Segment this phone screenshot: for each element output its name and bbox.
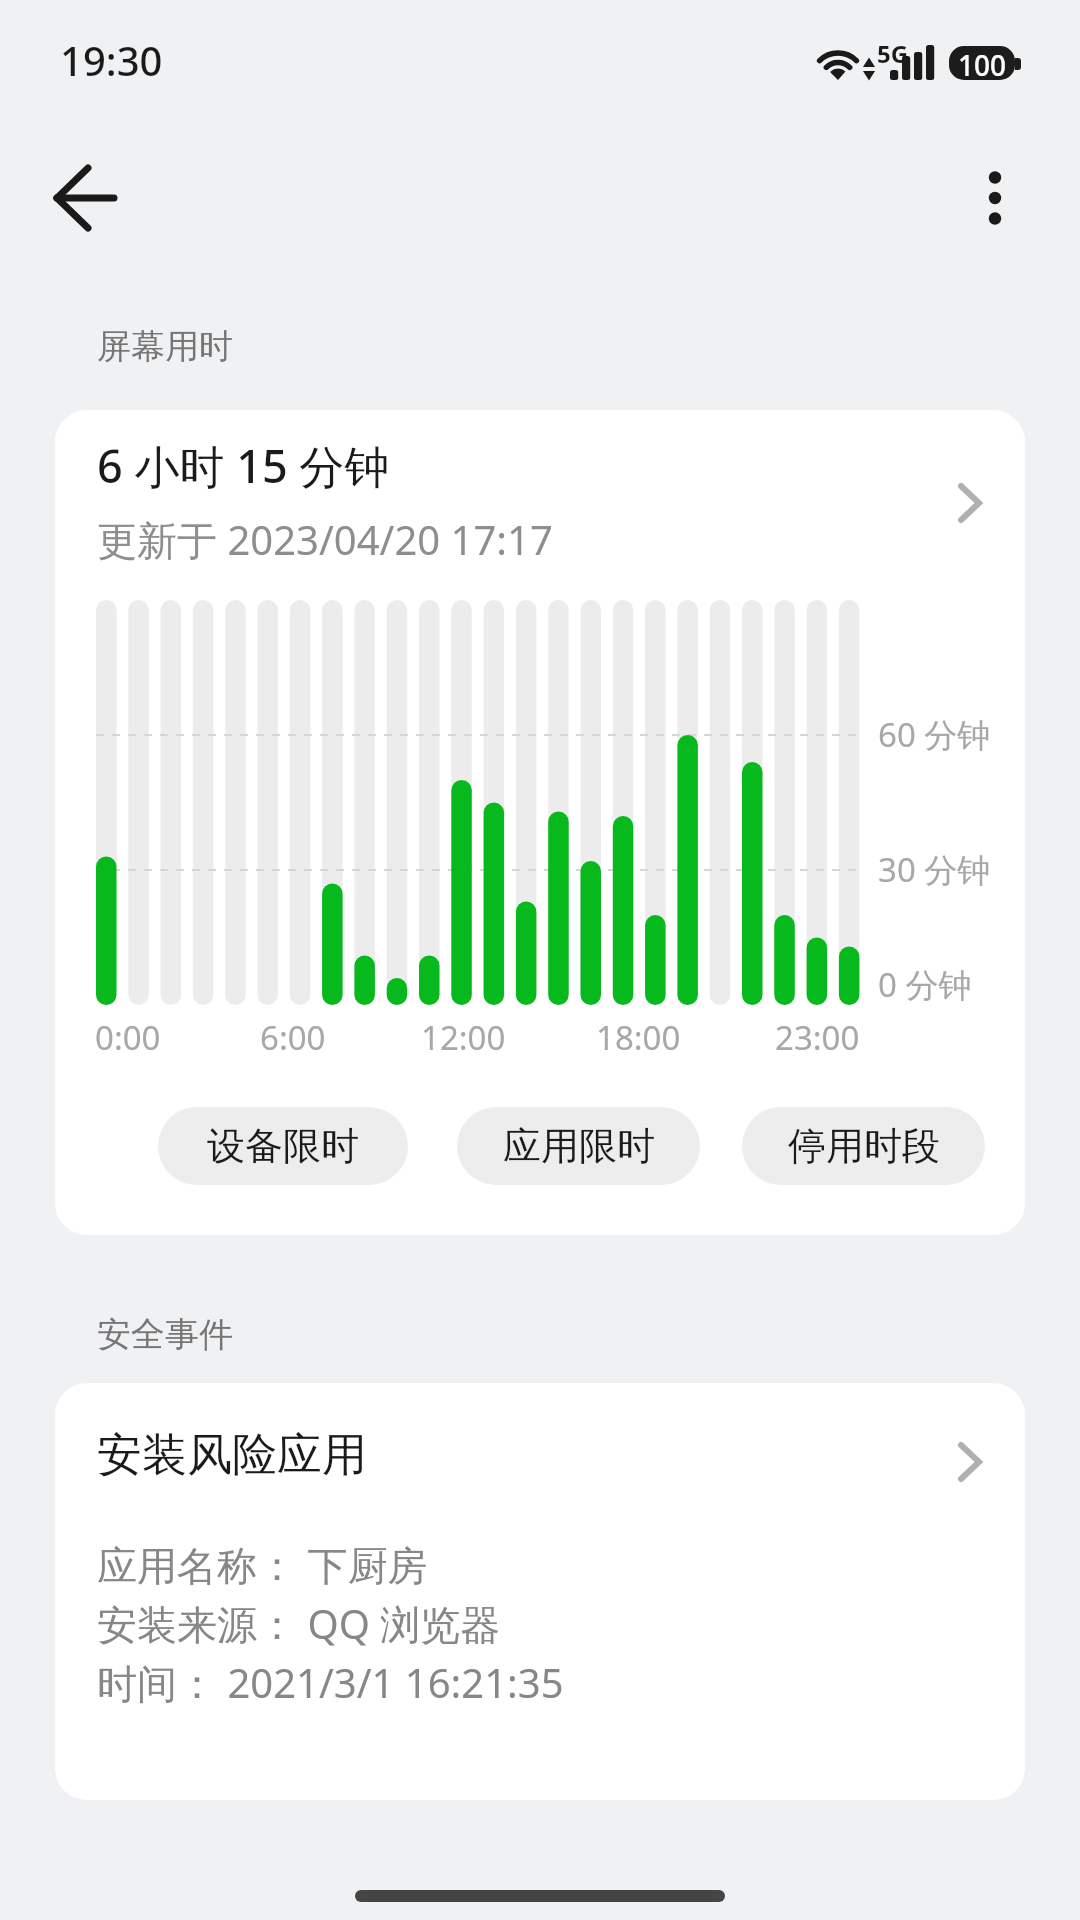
staticText: 100 [958, 46, 1007, 80]
staticText: 23:00 [775, 1015, 860, 1059]
staticText: 应用限时 [503, 1122, 655, 1170]
button[interactable] [55, 410, 1025, 1235]
staticText: 30 分钟 [878, 847, 991, 892]
staticText: 19:30 [60, 33, 163, 87]
staticText: 应用名称： 下厨房 [97, 1537, 428, 1592]
staticText: 屏幕用时 [97, 325, 233, 368]
staticText: 时间： 2021/3/1 16:21:35 [97, 1655, 564, 1710]
staticText: 6:00 [260, 1015, 326, 1059]
staticText: 安装风险应用 [97, 1427, 367, 1484]
button[interactable] [55, 1383, 1025, 1800]
staticText: 18:00 [596, 1015, 681, 1059]
button[interactable] [955, 158, 1035, 238]
staticText: 0 分钟 [878, 962, 972, 1007]
button[interactable]: 应用限时 [457, 1107, 700, 1185]
staticText: 设备限时 [207, 1122, 359, 1170]
button[interactable]: 停用时段 [742, 1107, 985, 1185]
button[interactable]: 设备限时 [158, 1107, 408, 1185]
staticText: 更新于 2023/04/20 17:17 [97, 512, 553, 567]
staticText: 6 小时 15 分钟 [97, 435, 390, 496]
staticText: 安全事件 [97, 1313, 233, 1356]
staticText: 5G [877, 37, 909, 67]
staticText: 60 分钟 [878, 712, 991, 757]
staticText: 停用时段 [788, 1122, 940, 1170]
staticText: 12:00 [421, 1015, 506, 1059]
staticText: 0:00 [95, 1015, 161, 1059]
staticText: 安装来源： QQ 浏览器 [97, 1596, 501, 1651]
button[interactable] [40, 158, 130, 238]
